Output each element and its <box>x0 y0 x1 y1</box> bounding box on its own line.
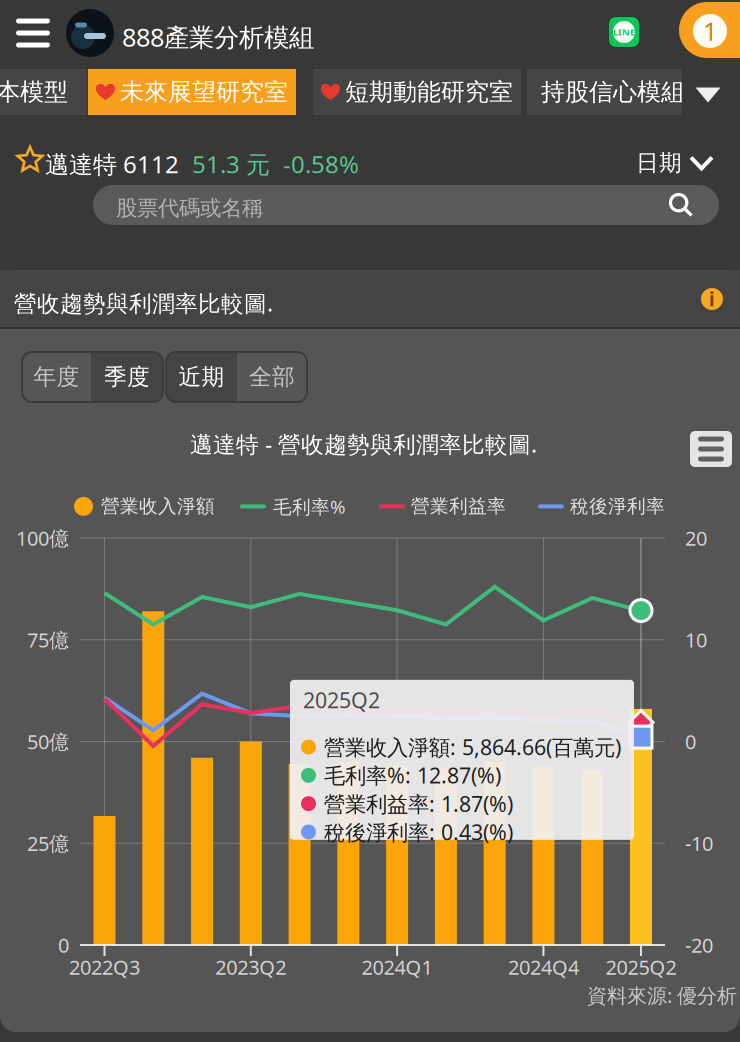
staticText: 季度 <box>104 363 150 391</box>
staticText: 近期 <box>178 363 224 391</box>
staticText: 營收趨勢與利潤率比較圖. <box>14 288 273 318</box>
staticText: LINE <box>613 26 635 38</box>
staticText: 75億 <box>27 626 69 653</box>
button[interactable]: 未來展望研究室 <box>88 69 296 115</box>
button[interactable]: 日期 <box>636 149 712 177</box>
staticText: -10 <box>685 830 713 857</box>
staticText: 資料來源: 優分析 <box>587 982 737 1009</box>
staticText: 持股信心模組 <box>541 77 685 107</box>
staticText: 短期動能研究室 <box>345 77 513 107</box>
staticText: 20 <box>685 525 707 551</box>
button[interactable]: 年度 <box>22 352 91 402</box>
staticText: 25億 <box>27 830 69 857</box>
button[interactable]: Chart options <box>690 431 732 467</box>
staticText: 51.3 元 <box>192 148 270 180</box>
staticText: 2025Q2 <box>605 954 676 980</box>
button[interactable]: 本模型 <box>0 69 87 115</box>
staticText: 營業利益率: 1.87(%) <box>324 789 513 818</box>
button[interactable]: 短期動能研究室 <box>313 69 521 115</box>
staticText: 888產業分析模組 <box>122 20 314 54</box>
staticText: 營業收入淨額 <box>101 495 215 518</box>
staticText: 毛利率% <box>273 494 346 519</box>
staticText: i <box>709 287 715 311</box>
staticText: 稅後淨利率: 0.43(%) <box>324 818 513 846</box>
button[interactable]: 持股信心模組 <box>527 69 699 115</box>
staticText: 年度 <box>33 363 79 391</box>
button[interactable]: LINE <box>609 17 639 47</box>
staticText: 0 <box>58 932 69 958</box>
staticText: 邁達特 6112 <box>45 148 179 180</box>
button[interactable]: Notifications <box>679 2 740 58</box>
staticText: 1 <box>703 14 717 48</box>
staticText: 邁達特 - 營收趨勢與利潤率比較圖. <box>190 429 537 459</box>
staticText: 2024Q4 <box>508 954 579 980</box>
button[interactable]: 季度 <box>91 352 163 402</box>
staticText: 股票代碼或名稱 <box>116 195 263 221</box>
staticText: 本模型 <box>0 77 68 107</box>
staticText: -0.58% <box>283 148 359 180</box>
staticText: 日期 <box>636 149 682 177</box>
button[interactable]: 近期 <box>166 352 237 402</box>
staticText: 2022Q3 <box>69 954 140 980</box>
button[interactable]: Favorite <box>10 140 50 180</box>
staticText: 稅後淨利率 <box>570 495 665 518</box>
button[interactable]: Info <box>694 281 730 317</box>
staticText: 營業利益率 <box>411 495 506 518</box>
staticText: 10 <box>685 626 707 653</box>
staticText: 未來展望研究室 <box>120 77 288 107</box>
button[interactable]: 股票代碼或名稱 <box>93 185 719 225</box>
staticText: 2024Q1 <box>362 954 433 980</box>
button[interactable]: Menu <box>5 5 61 61</box>
staticText: -20 <box>685 932 713 958</box>
staticText: 50億 <box>27 728 69 755</box>
staticText: 全部 <box>249 363 295 391</box>
staticText: 營業收入淨額: 5,864.66(百萬元) <box>324 733 621 761</box>
button[interactable]: More tabs <box>684 71 732 119</box>
staticText: 2025Q2 <box>303 686 380 714</box>
staticText: 100億 <box>16 525 69 551</box>
staticText: 2023Q2 <box>215 954 286 980</box>
staticText: 毛利率%: 12.87(%) <box>324 761 501 789</box>
staticText: 0 <box>685 728 696 755</box>
button[interactable]: 全部 <box>237 352 307 402</box>
